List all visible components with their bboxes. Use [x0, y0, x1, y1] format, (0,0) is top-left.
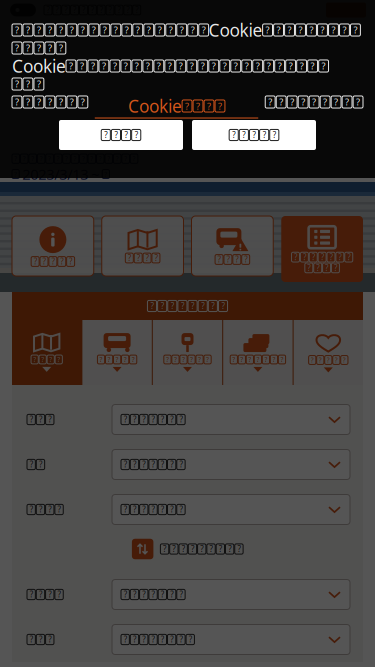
staticText: ? — [171, 301, 174, 311]
staticText: ? — [34, 256, 37, 267]
staticText: ? — [133, 459, 136, 470]
staticText: ? — [59, 42, 63, 54]
staticText: Cookie — [128, 94, 182, 117]
staticText: ? — [179, 414, 182, 425]
button[interactable]: ? — [153, 320, 222, 385]
staticText: ? — [146, 253, 149, 263]
button[interactable]: ? — [112, 404, 350, 434]
staticText: ? — [26, 78, 30, 90]
staticText: ? — [157, 60, 161, 72]
staticText: ? — [182, 355, 185, 364]
staticText: ? — [232, 130, 235, 140]
button[interactable]: ? — [12, 320, 81, 385]
staticText: ? — [42, 256, 45, 267]
staticText: ? — [92, 24, 96, 36]
staticText: ? — [242, 130, 245, 140]
staticText: ? — [133, 634, 136, 645]
staticText: ? — [30, 504, 33, 515]
staticText: ? — [356, 96, 360, 108]
staticText: ? — [218, 254, 221, 265]
staticText: ? — [161, 414, 164, 425]
staticText: ? — [99, 355, 102, 364]
staticText: ? — [168, 60, 172, 72]
staticText: ? — [237, 544, 240, 554]
staticText: ? — [158, 24, 162, 36]
staticText: ? — [39, 459, 42, 470]
staticText: ? — [272, 355, 275, 364]
staticText: ? — [201, 60, 205, 72]
staticText: ? — [69, 60, 73, 72]
staticText: ? — [298, 24, 302, 36]
staticText: ? — [278, 60, 282, 72]
staticText: 2023/3/13 — [22, 164, 88, 184]
staticText: ? — [263, 130, 266, 140]
button[interactable]: ? — [12, 216, 94, 276]
staticText: ? — [57, 355, 60, 364]
staticText: ? — [170, 414, 173, 425]
staticText: ? — [133, 589, 136, 600]
staticText: ? — [226, 254, 229, 265]
button[interactable]: ? — [132, 532, 243, 566]
staticText: ? — [48, 24, 52, 36]
staticText: ? — [206, 355, 209, 364]
staticText: ? — [103, 24, 107, 36]
staticText: ? — [132, 355, 135, 364]
staticText: ? — [191, 301, 194, 311]
staticText: ? — [135, 60, 139, 72]
button[interactable]: Cookie — [95, 94, 258, 109]
button[interactable]: ? — [191, 216, 273, 276]
button[interactable]: ? — [102, 216, 184, 276]
staticText: ? — [48, 634, 51, 645]
button[interactable]: ? — [192, 120, 316, 150]
staticText: ? — [142, 504, 145, 515]
button[interactable]: ? — [112, 624, 350, 654]
button[interactable]: ? — [112, 579, 350, 609]
staticText: ? — [48, 42, 52, 54]
button[interactable]: ? — [281, 216, 363, 282]
staticText: ? — [51, 256, 54, 267]
staticText: ? — [303, 252, 306, 262]
staticText: ? — [30, 459, 33, 470]
staticText: ? — [70, 24, 74, 36]
button[interactable]: ? — [294, 320, 363, 385]
staticText: ? — [124, 60, 128, 72]
staticText: ? — [81, 24, 85, 36]
staticText: ? — [59, 96, 63, 108]
staticText: ? — [81, 96, 85, 108]
staticText: ? — [218, 100, 222, 112]
button[interactable]: ? — [112, 449, 350, 479]
staticText: ? — [256, 355, 259, 364]
staticText: ? — [152, 414, 155, 425]
staticText: ? — [329, 252, 332, 262]
staticText: ? — [48, 96, 52, 108]
staticText: ? — [179, 589, 182, 600]
staticText: ? — [266, 24, 270, 36]
staticText: ? — [219, 544, 222, 554]
staticText: ? — [39, 589, 42, 600]
staticText: ? — [170, 589, 173, 600]
button[interactable]: ? — [223, 320, 293, 385]
button[interactable]: ? — [82, 320, 152, 385]
staticText: ? — [124, 589, 127, 600]
staticText: ? — [15, 78, 19, 90]
staticText: ? — [316, 263, 319, 273]
button[interactable]: ? — [112, 494, 350, 524]
staticText: ? — [152, 459, 155, 470]
staticText: ? — [30, 414, 33, 425]
staticText: ? — [170, 504, 173, 515]
staticText: ? — [147, 24, 151, 36]
staticText: ? — [290, 96, 294, 108]
button[interactable]: ? — [59, 120, 183, 150]
staticText: ? — [114, 24, 118, 36]
